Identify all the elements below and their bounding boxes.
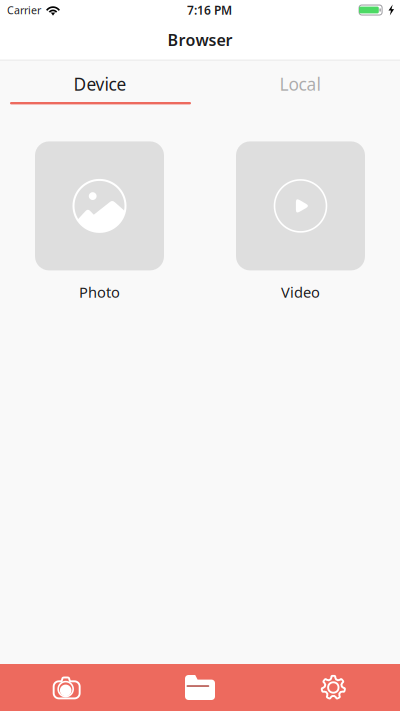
button[interactable]: Local [200,61,400,102]
button[interactable]: Video [236,141,365,302]
staticText: Browser [167,29,232,50]
staticText: Device [73,72,126,95]
button[interactable]: Files [133,664,267,711]
staticText: Local [279,72,320,95]
staticText: 7:16 PM [187,2,232,18]
button[interactable]: Settings [267,664,400,711]
button[interactable]: Photo [35,141,164,302]
staticText: Photo [79,282,120,302]
staticText: Video [281,282,320,302]
button[interactable]: Device [0,61,200,102]
staticText: Carrier [7,3,41,17]
button[interactable]: Camera [0,664,133,711]
